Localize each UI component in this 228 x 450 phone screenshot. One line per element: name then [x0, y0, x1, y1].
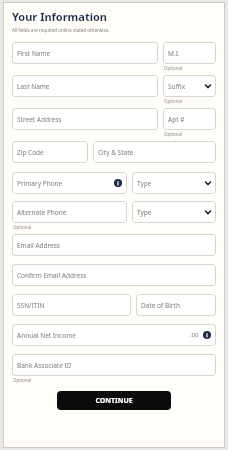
- staticText: CONTINUE: [95, 396, 133, 406]
- staticText: Optional: [13, 377, 32, 383]
- staticText: Optional: [164, 131, 183, 137]
- staticText: Bank Associate ID: [17, 361, 211, 370]
- staticText: Your Information: [12, 9, 108, 24]
- button[interactable]: Type: [132, 172, 216, 194]
- button[interactable]: Apt #: [163, 108, 216, 130]
- staticText: Optional: [164, 65, 183, 71]
- staticText: First Name: [17, 49, 153, 58]
- staticText: Suffix: [168, 82, 204, 91]
- button[interactable]: More information: [203, 331, 211, 339]
- staticText: All fields are required unless stated ot…: [12, 27, 110, 33]
- staticText: SSN/ITIN: [17, 301, 126, 310]
- button[interactable]: Primary Phone: [12, 172, 127, 194]
- button[interactable]: First Name: [12, 42, 158, 64]
- staticText: M.I.: [168, 49, 211, 58]
- staticText: Date of Birth: [141, 301, 211, 310]
- other: Open dropdown: [204, 82, 212, 90]
- button[interactable]: Street Address: [12, 108, 158, 130]
- button[interactable]: Type: [132, 201, 216, 223]
- staticText: .00: [190, 331, 199, 339]
- staticText: Email Address: [17, 241, 211, 250]
- button[interactable]: M.I.: [163, 42, 216, 64]
- button[interactable]: CONTINUE: [57, 391, 171, 410]
- button[interactable]: Alternate Phone: [12, 201, 127, 223]
- button[interactable]: City & State: [93, 141, 216, 163]
- other: Open dropdown: [204, 208, 212, 216]
- button[interactable]: Annual Net Income: [12, 324, 216, 346]
- staticText: Alternate Phone: [17, 208, 122, 217]
- staticText: Annual Net Income: [17, 331, 190, 340]
- button[interactable]: More information: [114, 179, 122, 187]
- staticText: Street Address: [17, 115, 153, 124]
- button[interactable]: Last Name: [12, 75, 158, 97]
- button[interactable]: Zip Code: [12, 141, 88, 163]
- button[interactable]: Email Address: [12, 234, 216, 256]
- button[interactable]: Date of Birth: [136, 294, 216, 316]
- staticText: Confirm Email Address: [17, 271, 211, 280]
- staticText: Last Name: [17, 82, 153, 91]
- staticText: Type: [137, 179, 204, 188]
- staticText: Zip Code: [17, 148, 83, 157]
- button[interactable]: Suffix: [163, 75, 216, 97]
- staticText: Optional: [13, 224, 32, 230]
- button[interactable]: Bank Associate ID: [12, 354, 216, 376]
- button[interactable]: Confirm Email Address: [12, 264, 216, 286]
- staticText: Optional: [164, 98, 183, 104]
- staticText: City & State: [98, 148, 211, 157]
- other: Open dropdown: [204, 179, 212, 187]
- staticText: Primary Phone: [17, 179, 114, 188]
- button[interactable]: SSN/ITIN: [12, 294, 131, 316]
- staticText: Type: [137, 208, 204, 217]
- staticText: Apt #: [168, 115, 211, 124]
